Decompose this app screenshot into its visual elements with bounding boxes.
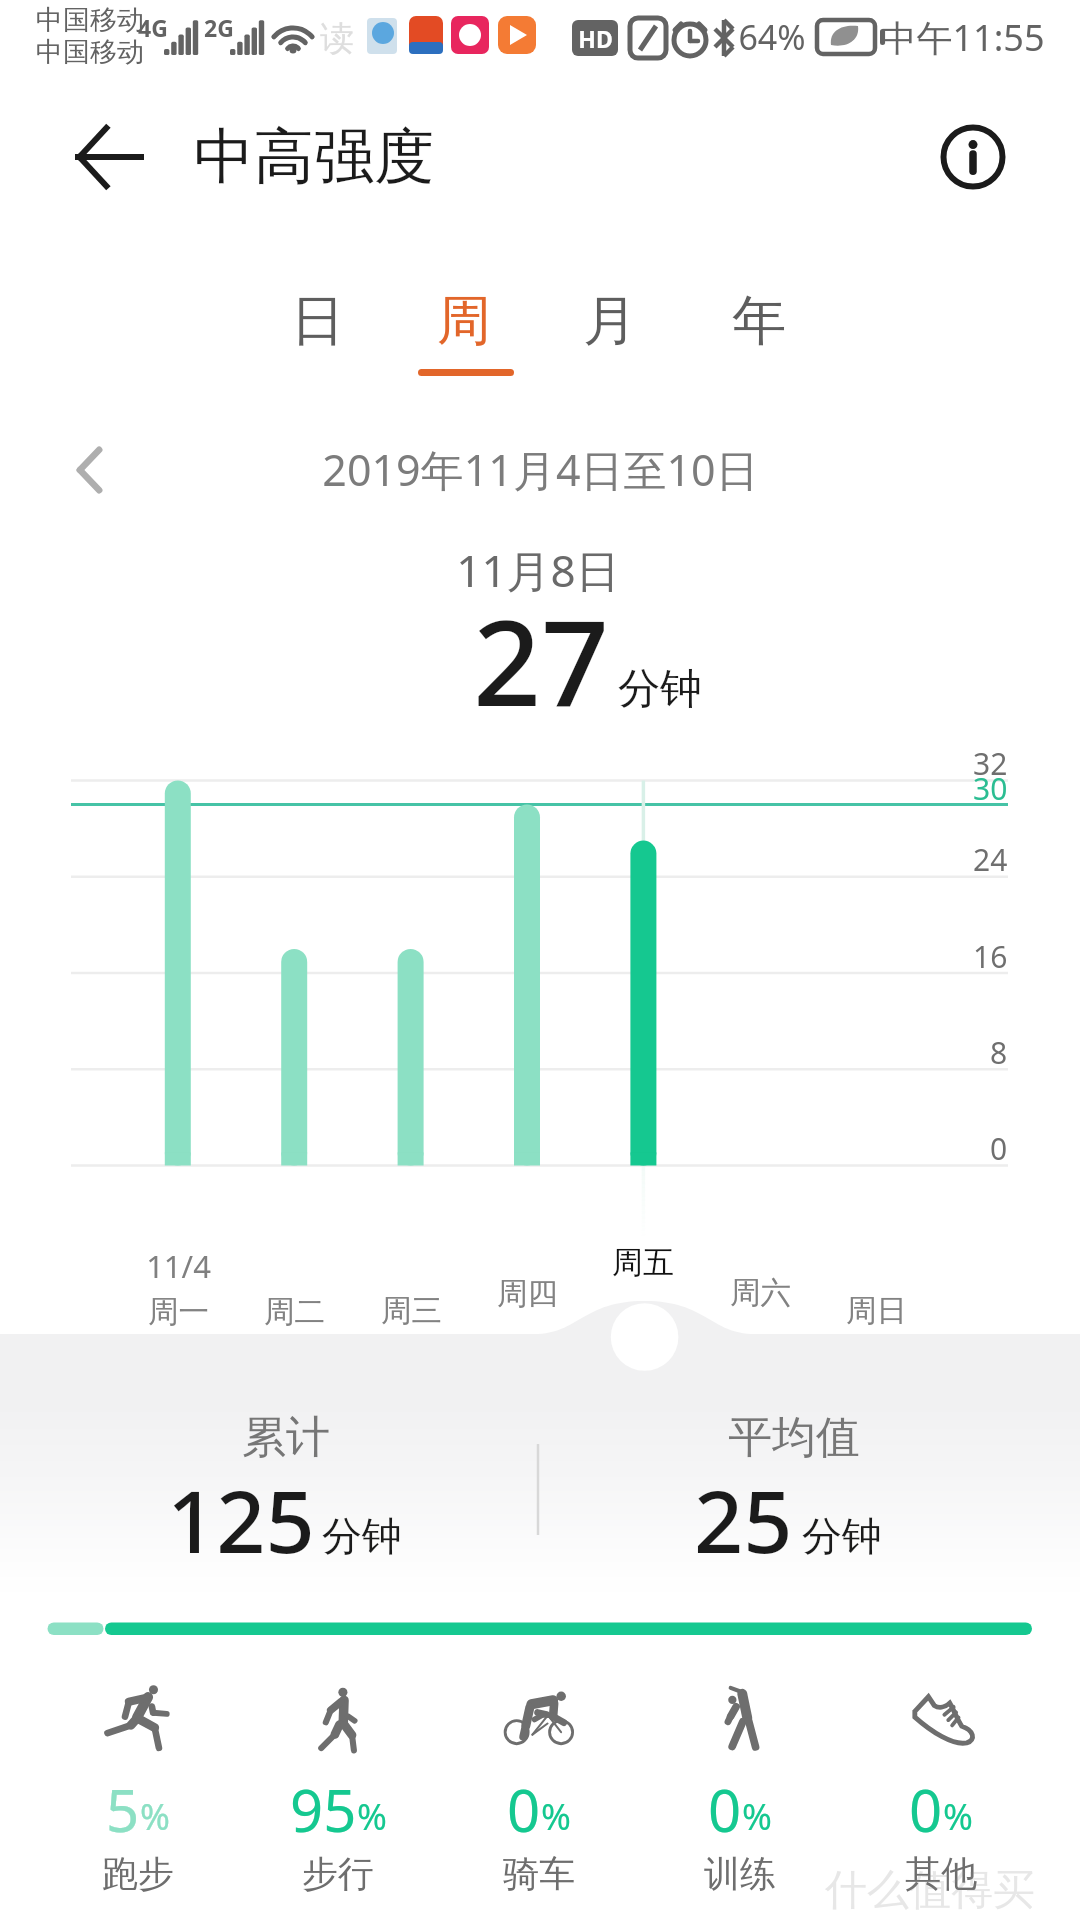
staticText: 25 [694,1461,793,1578]
button[interactable]: 周 [402,280,526,390]
button[interactable]: Back [62,110,156,204]
staticText: 累计 [242,1410,330,1465]
staticText: 0 [708,1770,742,1849]
staticText: 骑车 [444,1851,634,1896]
staticText: 周三 [381,1292,442,1330]
staticText: 其他 [846,1851,1036,1896]
staticText: 月 [583,287,637,355]
button[interactable]: 年 [697,280,821,390]
staticText: % [140,1792,170,1841]
staticText: 周六 [730,1274,791,1312]
staticText: % [943,1792,973,1841]
staticText: HD [578,23,613,54]
staticText: 训练 [645,1851,835,1896]
staticText: 0 [990,1128,1008,1169]
staticText: 年 [732,287,786,355]
staticText: % [742,1792,772,1841]
staticText: 周四 [497,1275,558,1313]
staticText: 什么值得买 [825,1864,1035,1917]
staticText: % [541,1792,571,1841]
staticText: 125 [167,1461,315,1578]
staticText: 周日 [846,1292,907,1330]
staticText: 24 [973,839,1008,880]
staticText: 中高强度 [194,119,434,195]
button[interactable]: 0 [846,1666,1036,1906]
staticText: 27 [473,579,610,741]
button[interactable]: 周三 [353,1279,469,1343]
button[interactable]: 周六 [702,1261,818,1325]
button[interactable]: Previous week [46,426,134,514]
staticText: % [357,1792,387,1841]
button[interactable]: 0 [645,1666,835,1906]
staticText: 64% [738,14,806,60]
button[interactable]: 中高强度 [180,110,460,204]
button[interactable]: Info [926,110,1020,204]
staticText: 日 [291,287,345,355]
staticText: 2G [204,12,234,43]
staticText: 5 [106,1770,140,1849]
staticText: 周二 [264,1293,325,1331]
staticText: 读 [320,17,354,60]
staticText: 平均值 [728,1410,860,1465]
button[interactable]: 0 [444,1666,634,1906]
staticText: 8 [990,1032,1008,1073]
button[interactable]: 日 [256,280,380,390]
staticText: 0 [909,1770,943,1849]
staticText: 中国移动 [36,35,144,69]
button[interactable]: 周二 [236,1280,352,1344]
staticText: 4G [138,12,168,43]
staticText: 跑步 [43,1851,233,1896]
staticText: 分钟 [802,1511,882,1561]
staticText: 11/4 [146,1245,211,1287]
staticText: 中午11:55 [880,13,1045,61]
staticText: 步行 [243,1851,433,1896]
staticText: 周五 [612,1243,674,1282]
staticText: 16 [973,936,1008,977]
staticText: 2019年11月4日至10日 [322,440,759,499]
staticText: 周 [437,287,491,355]
staticText: 95 [290,1770,357,1849]
button[interactable]: 周日 [818,1279,934,1343]
staticText: 32 [973,743,1008,784]
button[interactable]: 周五 [585,1230,701,1294]
button[interactable]: 周四 [469,1262,585,1326]
staticText: 11月8日 [456,540,620,600]
staticText: 30 [973,768,1008,809]
button[interactable]: 月 [548,280,672,390]
staticText: 中国移动 [36,3,144,37]
button[interactable]: 周一 [120,1280,236,1344]
staticText: 分钟 [618,663,702,716]
button[interactable]: 95 [243,1666,433,1906]
button[interactable]: 5 [43,1666,233,1906]
staticText: 0 [507,1770,541,1849]
staticText: 分钟 [322,1511,402,1561]
staticText: 周一 [148,1293,209,1331]
